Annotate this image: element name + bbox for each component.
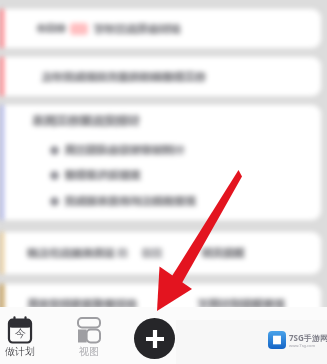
staticText: 本周工作重点安排计 [32, 113, 140, 128]
button[interactable]: 本周工作重点安排计 [0, 105, 321, 220]
staticText: 下周计划提醒事项 [197, 297, 285, 311]
staticText: 做计划 [5, 345, 35, 358]
staticText: 7SG手游网 [289, 332, 327, 343]
button[interactable]: 视图 [69, 317, 108, 362]
staticText: 完成版本发布与上线检查项 [64, 194, 196, 208]
staticText: 下午三点开会讨论 [93, 22, 181, 36]
button[interactable]: 今日待 [0, 9, 321, 48]
staticText: 约 [117, 246, 128, 260]
staticText: 明天提醒 [201, 246, 245, 260]
button[interactable]: 今 [0, 317, 39, 362]
staticText: 上午完成项目方案的初稿整理工作 [41, 70, 206, 84]
button[interactable]: Add [134, 318, 175, 359]
button[interactable]: 晚上七点健身房运 [0, 232, 321, 274]
button[interactable]: 上午完成项目方案的初稿整理工作 [0, 57, 321, 96]
staticText: 晚上七点健身房运 [27, 246, 115, 260]
staticText: 今 [15, 326, 26, 340]
staticText: 整理客户反馈意 [64, 168, 141, 182]
staticText: www.7sg.com [289, 343, 316, 348]
staticText: 今日待 [36, 22, 66, 35]
staticText: 备注 [141, 246, 163, 260]
button[interactable]: 周末安排家庭聚餐活动 [0, 284, 321, 324]
staticText: 周三团队会议评审材料一 [64, 143, 185, 157]
staticText: 周末安排家庭聚餐活动 [27, 297, 137, 311]
staticText: 视图 [79, 345, 99, 358]
